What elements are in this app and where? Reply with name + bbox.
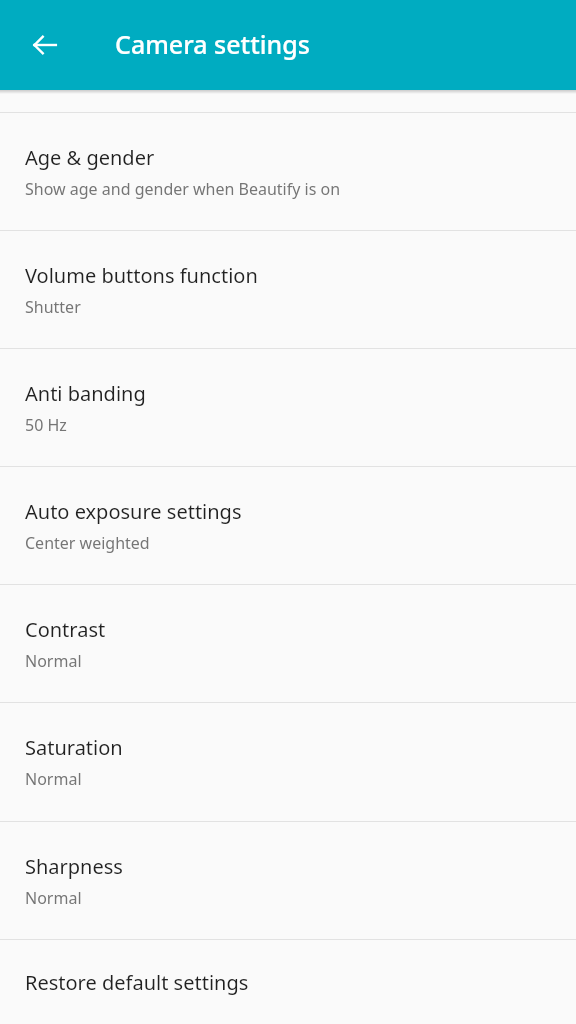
button[interactable]: Saturation [0,703,576,821]
staticText: Normal [25,768,82,790]
staticText: 50 Hz [25,414,67,436]
button[interactable]: Navigate up [22,22,68,68]
staticText: Auto exposure settings [25,498,242,525]
button[interactable]: Anti banding [0,349,576,466]
staticText: Restore default settings [25,969,249,996]
button[interactable]: Volume buttons function [0,231,576,348]
staticText: Contrast [25,616,106,643]
staticText: Camera settings [115,27,310,61]
button[interactable]: Auto exposure settings [0,467,576,584]
button[interactable]: Contrast [0,585,576,702]
button[interactable]: Sharpness [0,822,576,939]
staticText: Sharpness [25,853,123,880]
staticText: Show age and gender when Beautify is on [25,178,341,200]
button[interactable]: Restore default settings [0,940,576,1024]
staticText: Center weighted [25,532,150,554]
staticText: Volume buttons function [25,262,258,289]
staticText: Normal [25,887,82,909]
staticText: Normal [25,650,82,672]
button[interactable]: Age & gender [0,113,576,230]
staticText: Saturation [25,734,123,761]
staticText: Anti banding [25,380,146,407]
staticText: Age & gender [25,144,155,171]
staticText: Shutter [25,296,81,318]
